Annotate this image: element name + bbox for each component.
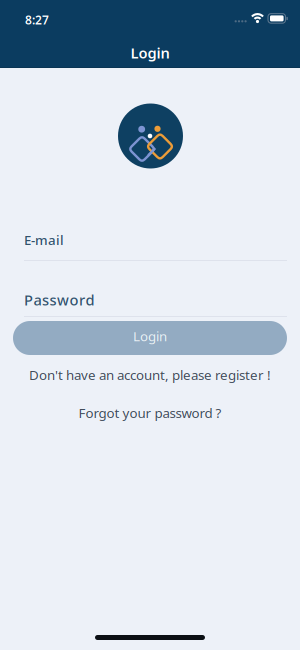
staticText: Don't have an account, please register ! bbox=[29, 366, 271, 384]
staticText: 8:27 bbox=[25, 12, 49, 28]
staticText: Forgot your password ? bbox=[78, 404, 221, 422]
button[interactable]: Forgot your password ? bbox=[0, 404, 300, 422]
staticText: Password bbox=[24, 290, 94, 309]
button[interactable]: Login bbox=[13, 321, 287, 355]
button[interactable]: Password bbox=[24, 290, 287, 317]
button[interactable]: Don't have an account, please register ! bbox=[0, 366, 300, 384]
staticText: Login bbox=[130, 43, 169, 62]
staticText: Login bbox=[133, 327, 167, 345]
staticText: E-mail bbox=[24, 231, 64, 249]
button[interactable]: E-mail bbox=[24, 231, 287, 261]
